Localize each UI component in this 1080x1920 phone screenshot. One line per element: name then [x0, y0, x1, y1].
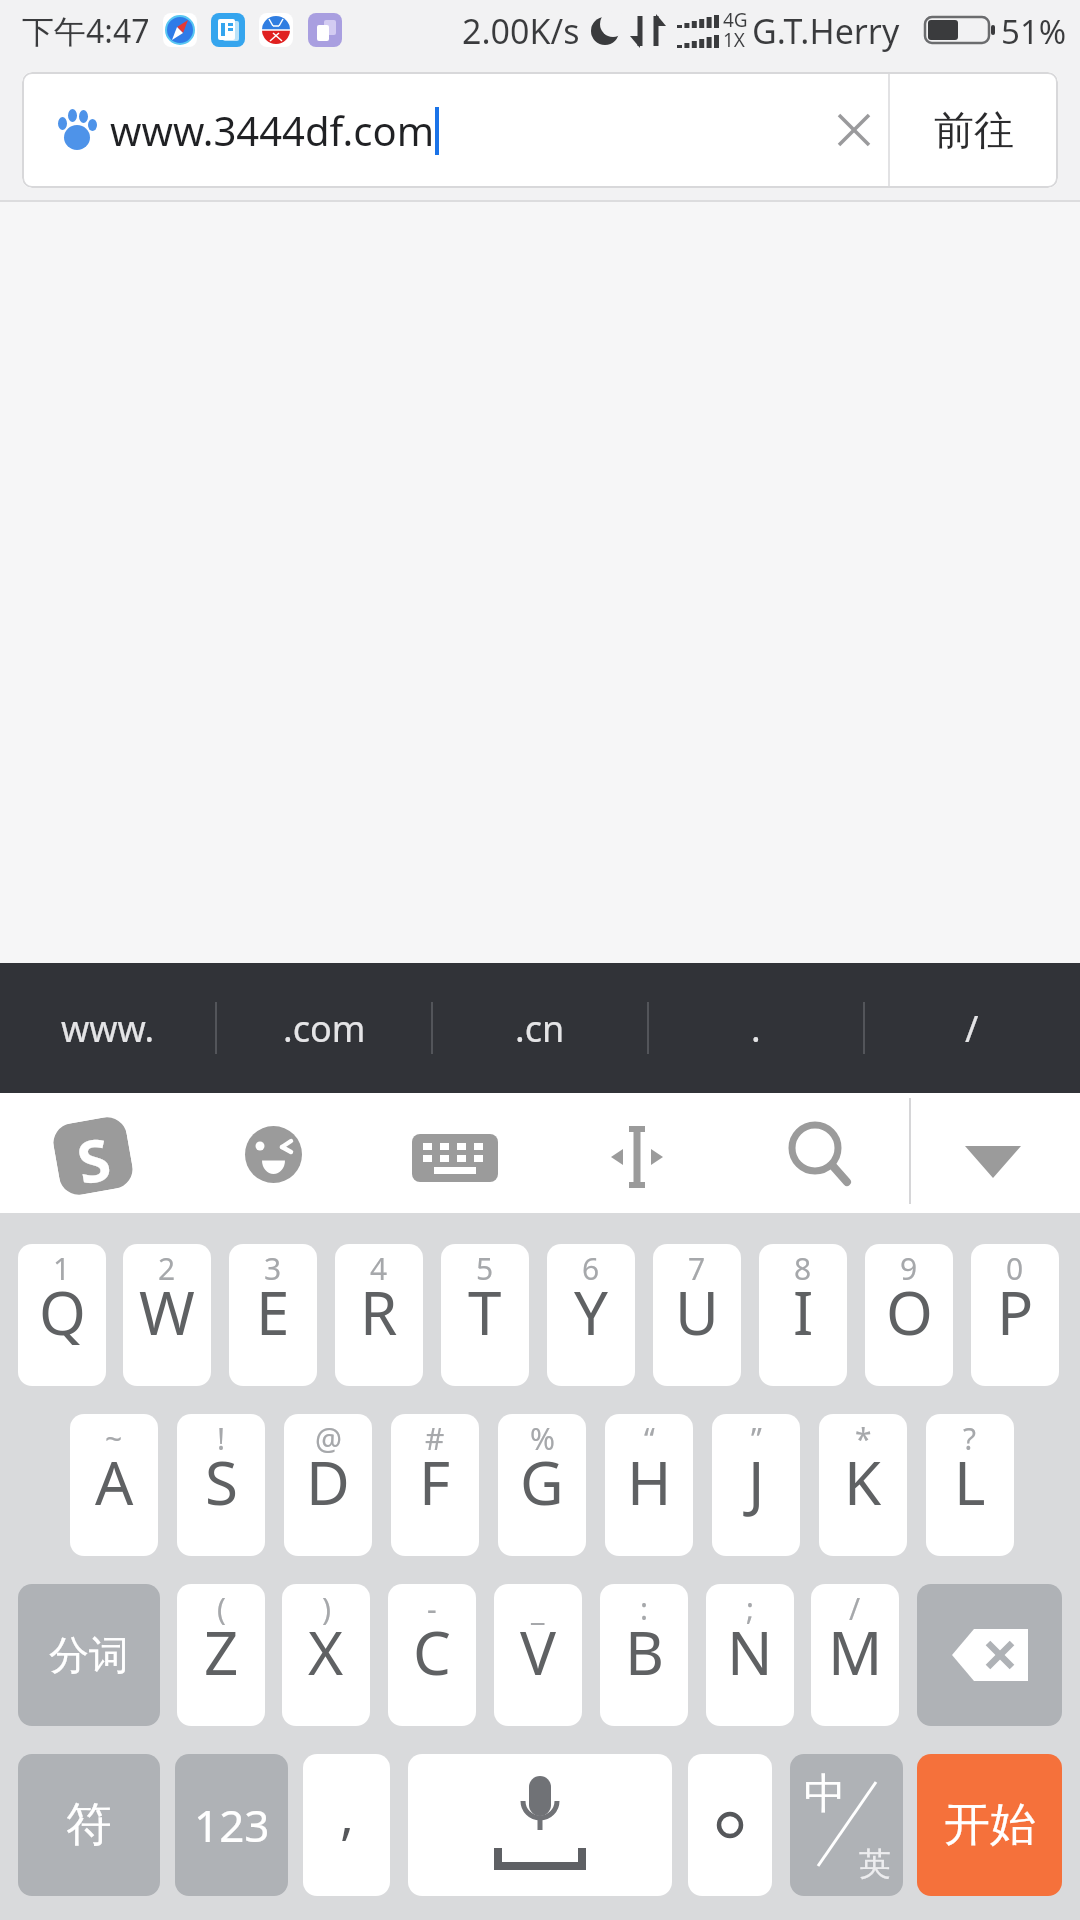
staticText: @: [315, 1418, 342, 1459]
button[interactable]: ?: [926, 1414, 1014, 1556]
button[interactable]: [408, 1754, 672, 1896]
staticText: (: [217, 1588, 226, 1629]
button[interactable]: /: [864, 963, 1080, 1093]
staticText: 9: [900, 1248, 918, 1289]
staticText: M: [828, 1611, 883, 1693]
button[interactable]: 0: [971, 1244, 1059, 1386]
button[interactable]: 5: [441, 1244, 529, 1386]
staticText: www.: [61, 1004, 155, 1053]
button[interactable]: /: [811, 1584, 899, 1726]
staticText: F: [419, 1441, 451, 1523]
button[interactable]: .cn: [432, 963, 648, 1093]
staticText: 6: [582, 1248, 600, 1289]
button[interactable]: 8: [759, 1244, 847, 1386]
staticText: :: [640, 1588, 649, 1629]
staticText: A: [95, 1441, 134, 1523]
button[interactable]: S: [50, 1114, 136, 1198]
staticText: T: [468, 1271, 502, 1353]
button[interactable]: ,: [303, 1754, 390, 1896]
button[interactable]: *: [819, 1414, 907, 1556]
staticText: 51%: [1001, 9, 1067, 54]
staticText: /: [965, 1004, 979, 1053]
button[interactable]: 7: [653, 1244, 741, 1386]
button[interactable]: (: [177, 1584, 265, 1726]
button[interactable]: “: [605, 1414, 693, 1556]
button[interactable]: @: [284, 1414, 372, 1556]
staticText: S: [71, 1118, 115, 1194]
staticText: ~: [105, 1418, 123, 1459]
staticText: %: [530, 1418, 555, 1459]
staticText: Z: [204, 1611, 239, 1693]
button[interactable]: [688, 1754, 772, 1896]
staticText: 1X: [723, 27, 746, 47]
staticText: R: [360, 1271, 398, 1353]
button[interactable]: ): [282, 1584, 370, 1726]
button[interactable]: !: [177, 1414, 265, 1556]
button[interactable]: .: [648, 963, 864, 1093]
staticText: www.3444df.com: [110, 103, 435, 157]
button[interactable]: 符: [18, 1754, 160, 1896]
button[interactable]: ”: [712, 1414, 800, 1556]
staticText: C: [413, 1611, 451, 1693]
button[interactable]: 分词: [18, 1584, 160, 1726]
staticText: 0: [1006, 1248, 1024, 1289]
staticText: 5: [476, 1248, 494, 1289]
staticText: ”: [751, 1418, 762, 1459]
staticText: B: [625, 1611, 664, 1693]
button[interactable]: 前往: [890, 72, 1058, 188]
staticText: !: [217, 1418, 226, 1459]
staticText: 1: [53, 1248, 71, 1289]
button[interactable]: %: [498, 1414, 586, 1556]
staticText: _: [531, 1588, 545, 1629]
staticText: E: [256, 1271, 290, 1353]
staticText: ;: [746, 1588, 755, 1629]
staticText: 7: [688, 1248, 706, 1289]
button[interactable]: ;: [706, 1584, 794, 1726]
button[interactable]: 123: [175, 1754, 288, 1896]
staticText: X: [308, 1611, 344, 1693]
staticText: Q: [39, 1271, 86, 1353]
staticText: /: [849, 1588, 861, 1629]
staticText: 8: [794, 1248, 812, 1289]
staticText: V: [520, 1611, 556, 1693]
staticText: D: [306, 1441, 350, 1523]
staticText: 4G: [723, 7, 748, 27]
button[interactable]: [785, 1118, 855, 1188]
button[interactable]: 2: [123, 1244, 211, 1386]
button[interactable]: 6: [547, 1244, 635, 1386]
staticText: 下午4:47: [22, 9, 150, 53]
button[interactable]: -: [388, 1584, 476, 1726]
button[interactable]: 4: [335, 1244, 423, 1386]
button[interactable]: _: [494, 1584, 582, 1726]
button[interactable]: 中: [790, 1754, 903, 1896]
staticText: 2.00K/s: [462, 8, 580, 54]
button[interactable]: #: [391, 1414, 479, 1556]
button[interactable]: [965, 1144, 1021, 1180]
button[interactable]: 3: [229, 1244, 317, 1386]
staticText: 英: [859, 1844, 891, 1884]
button[interactable]: www.: [0, 963, 216, 1093]
staticText: “: [644, 1418, 655, 1459]
button[interactable]: [605, 1125, 669, 1189]
staticText: ?: [963, 1418, 977, 1459]
staticText: P: [997, 1271, 1034, 1353]
button[interactable]: 开始: [917, 1754, 1062, 1896]
button[interactable]: [412, 1134, 498, 1182]
button[interactable]: :: [600, 1584, 688, 1726]
staticText: U: [675, 1271, 719, 1353]
staticText: 4: [370, 1248, 388, 1289]
button[interactable]: 9: [865, 1244, 953, 1386]
button[interactable]: .com: [216, 963, 432, 1093]
button[interactable]: www.3444df.com: [22, 72, 1058, 188]
staticText: ,: [340, 1778, 354, 1849]
staticText: O: [886, 1271, 933, 1353]
staticText: 3: [264, 1248, 282, 1289]
staticText: *: [855, 1418, 872, 1459]
staticText: 2: [158, 1248, 176, 1289]
button[interactable]: [245, 1126, 302, 1183]
staticText: W: [139, 1271, 195, 1353]
button[interactable]: [917, 1584, 1062, 1726]
staticText: 分词: [49, 1630, 129, 1680]
button[interactable]: ~: [70, 1414, 158, 1556]
button[interactable]: 1: [18, 1244, 106, 1386]
